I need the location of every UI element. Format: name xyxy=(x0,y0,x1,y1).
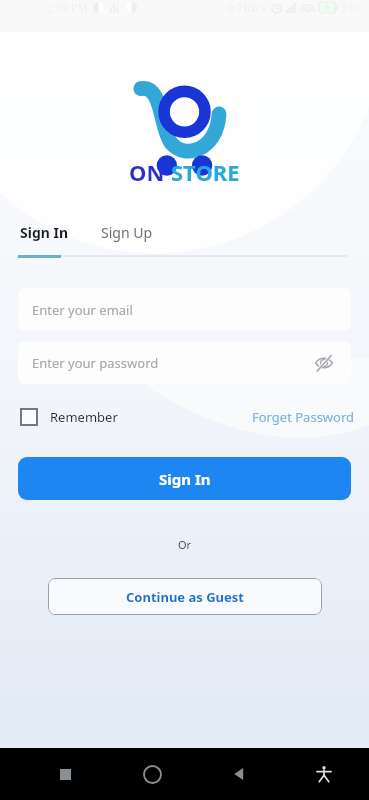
button[interactable]: Enter your password xyxy=(18,341,351,384)
button[interactable]: Forget Password xyxy=(248,404,359,430)
staticText: Sign In xyxy=(159,469,211,489)
staticText: Forget Password xyxy=(252,408,355,426)
button[interactable]: Back xyxy=(219,754,259,794)
staticText: Or xyxy=(0,537,369,552)
staticText: Sign Up xyxy=(101,223,153,242)
staticText: Remember xyxy=(50,408,118,426)
staticText: STORE xyxy=(171,157,240,187)
button[interactable]: Continue as Guest xyxy=(48,578,322,615)
button[interactable]: Sign Up xyxy=(99,219,155,246)
staticText: ON xyxy=(129,157,171,187)
staticText: 2:39 PM xyxy=(46,0,88,15)
staticText: Enter your password xyxy=(32,354,159,372)
button[interactable]: Home xyxy=(132,754,172,794)
button[interactable]: Accessibility xyxy=(304,754,344,794)
button[interactable]: Enter your email xyxy=(18,288,351,331)
staticText: 0.7KB/s xyxy=(228,0,267,15)
staticText: Enter your email xyxy=(32,301,133,319)
staticText: Sign In xyxy=(20,223,69,242)
button[interactable]: Recents xyxy=(45,754,85,794)
button[interactable]: Sign In xyxy=(18,219,71,246)
button[interactable]: Remember xyxy=(18,404,120,430)
button[interactable]: Sign In xyxy=(18,457,351,500)
button[interactable]: Toggle password visibility xyxy=(311,350,337,376)
staticText: Continue as Guest xyxy=(126,588,244,606)
